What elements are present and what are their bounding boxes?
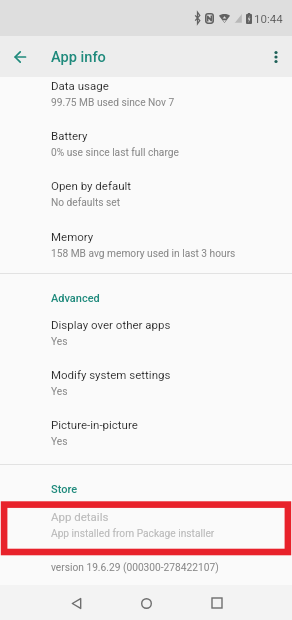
button[interactable]: Modify system settings	[0, 364, 292, 414]
button[interactable]: Recent apps	[203, 589, 231, 617]
staticText: No defaults set	[51, 197, 121, 209]
staticText: 0% use since last full charge	[51, 147, 179, 159]
button[interactable]: Data usage	[0, 75, 292, 125]
button[interactable]: App details	[0, 506, 292, 556]
staticText: Modify system settings	[51, 368, 171, 381]
staticText: 99.75 MB used since Nov 7	[51, 97, 175, 109]
staticText: App info	[51, 48, 106, 65]
button[interactable]: Battery	[0, 125, 292, 175]
staticText: Yes	[51, 336, 68, 348]
staticText: Battery	[51, 129, 88, 142]
button[interactable]: Open by default	[0, 175, 292, 225]
staticText: 10:44	[254, 12, 283, 25]
button[interactable]: More options	[263, 44, 289, 70]
staticText: Display over other apps	[51, 318, 171, 331]
staticText: version 19.6.29 (000300-278422107)	[51, 562, 219, 574]
staticText: Advanced	[51, 292, 100, 305]
button[interactable]: Back	[62, 589, 90, 617]
staticText: Open by default	[51, 179, 132, 192]
staticText: Picture-in-picture	[51, 418, 138, 431]
staticText: Yes	[51, 386, 68, 398]
staticText: 158 MB avg memory used in last 3 hours	[51, 248, 236, 260]
staticText: App installed from Package installer	[51, 528, 215, 540]
staticText: Memory	[51, 230, 94, 243]
button[interactable]: Memory	[0, 226, 292, 276]
button[interactable]: Home	[132, 589, 160, 617]
staticText: Data usage	[51, 79, 109, 92]
staticText: Store	[51, 483, 78, 496]
button[interactable]: Picture-in-picture	[0, 414, 292, 464]
staticText: Yes	[51, 436, 68, 448]
staticText: App details	[51, 510, 109, 523]
button[interactable]: Display over other apps	[0, 314, 292, 364]
button[interactable]: Navigate up	[7, 44, 33, 70]
